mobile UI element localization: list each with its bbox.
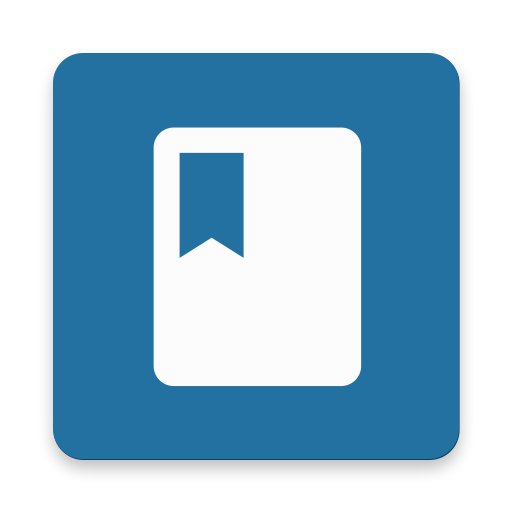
image: Bookmark app icon (53, 53, 459, 459)
